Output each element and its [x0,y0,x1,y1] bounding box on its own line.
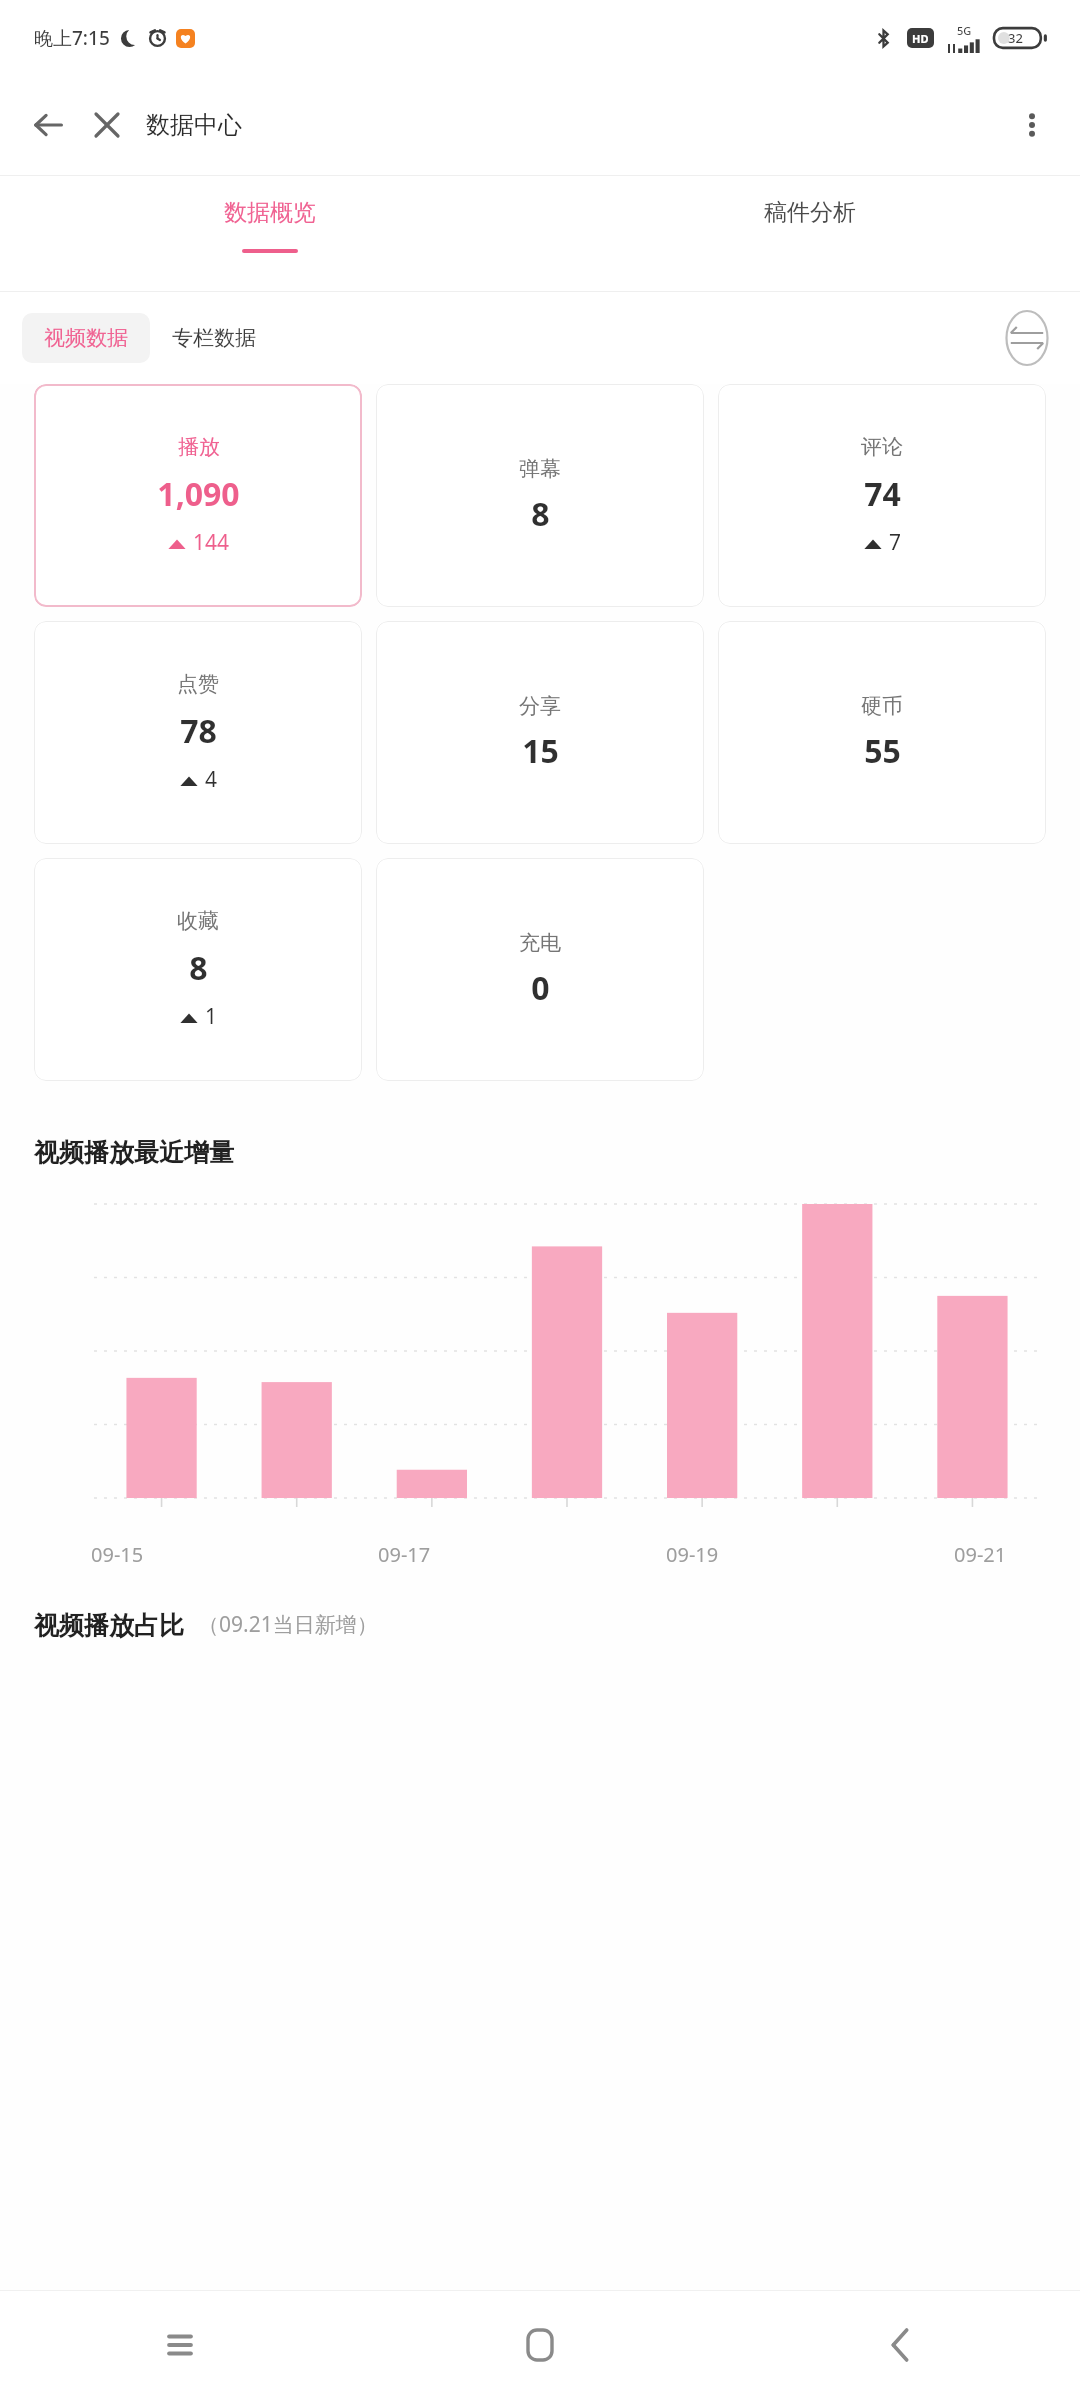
button[interactable]: Recents [0,2290,360,2400]
button[interactable]: 充电 [376,858,704,1081]
button[interactable]: Home [360,2290,720,2400]
staticText: 分享 [519,693,561,719]
staticText: 5G [957,23,972,38]
staticText: 评论 [861,434,903,460]
button[interactable]: 点赞 [34,621,362,844]
button[interactable]: 评论 [718,384,1046,607]
staticText: 15 [522,729,559,773]
staticText: 0 [531,966,550,1010]
button[interactable]: 视频数据 [22,313,150,363]
staticText: 视频播放占比 [34,1610,184,1641]
button[interactable]: Back [18,95,78,155]
staticText: 视频播放最近增量 [34,1137,234,1168]
staticText: 8 [189,946,208,990]
staticText: 09-15 [91,1541,144,1568]
staticText: 稿件分析 [764,198,856,227]
button[interactable]: 收藏 [34,858,362,1081]
button[interactable]: 数据概览 [0,176,540,291]
staticText: 晚上7:15 [34,25,110,51]
staticText: 点赞 [177,671,219,697]
staticText: 专栏数据 [172,325,256,351]
staticText: 09-17 [378,1541,431,1568]
button[interactable]: 硬币 [718,621,1046,844]
staticText: 78 [180,709,217,753]
staticText: 7 [889,528,902,557]
staticText: 144 [193,528,230,557]
button[interactable]: 播放 [34,384,362,607]
staticText: HD [912,31,929,46]
staticText: 09-21 [954,1541,1007,1568]
staticText: 1 [205,1002,218,1031]
staticText: 数据概览 [224,198,316,227]
button[interactable]: 稿件分析 [540,176,1080,291]
staticText: 收藏 [177,908,219,934]
staticText: 充电 [519,930,561,956]
staticText: 55 [864,729,901,773]
staticText: 4 [205,765,218,794]
button[interactable]: 专栏数据 [150,313,278,363]
button[interactable]: More options [1004,97,1060,153]
button[interactable]: Switch data view [1000,311,1054,365]
staticText: 弹幕 [519,456,561,482]
staticText: 播放 [178,434,220,460]
staticText: 视频数据 [44,325,128,351]
staticText: 32 [1008,29,1023,47]
staticText: 1,090 [157,472,240,516]
staticText: 硬币 [861,693,903,719]
staticText: 74 [864,472,901,516]
staticText: （09.21当日新增） [198,1610,378,1639]
button[interactable]: 弹幕 [376,384,704,607]
staticText: 09-19 [666,1541,719,1568]
button[interactable]: 分享 [376,621,704,844]
staticText: 数据中心 [146,110,242,140]
button[interactable]: Back [720,2290,1080,2400]
staticText: 8 [531,492,550,536]
button[interactable]: Close [78,96,136,154]
